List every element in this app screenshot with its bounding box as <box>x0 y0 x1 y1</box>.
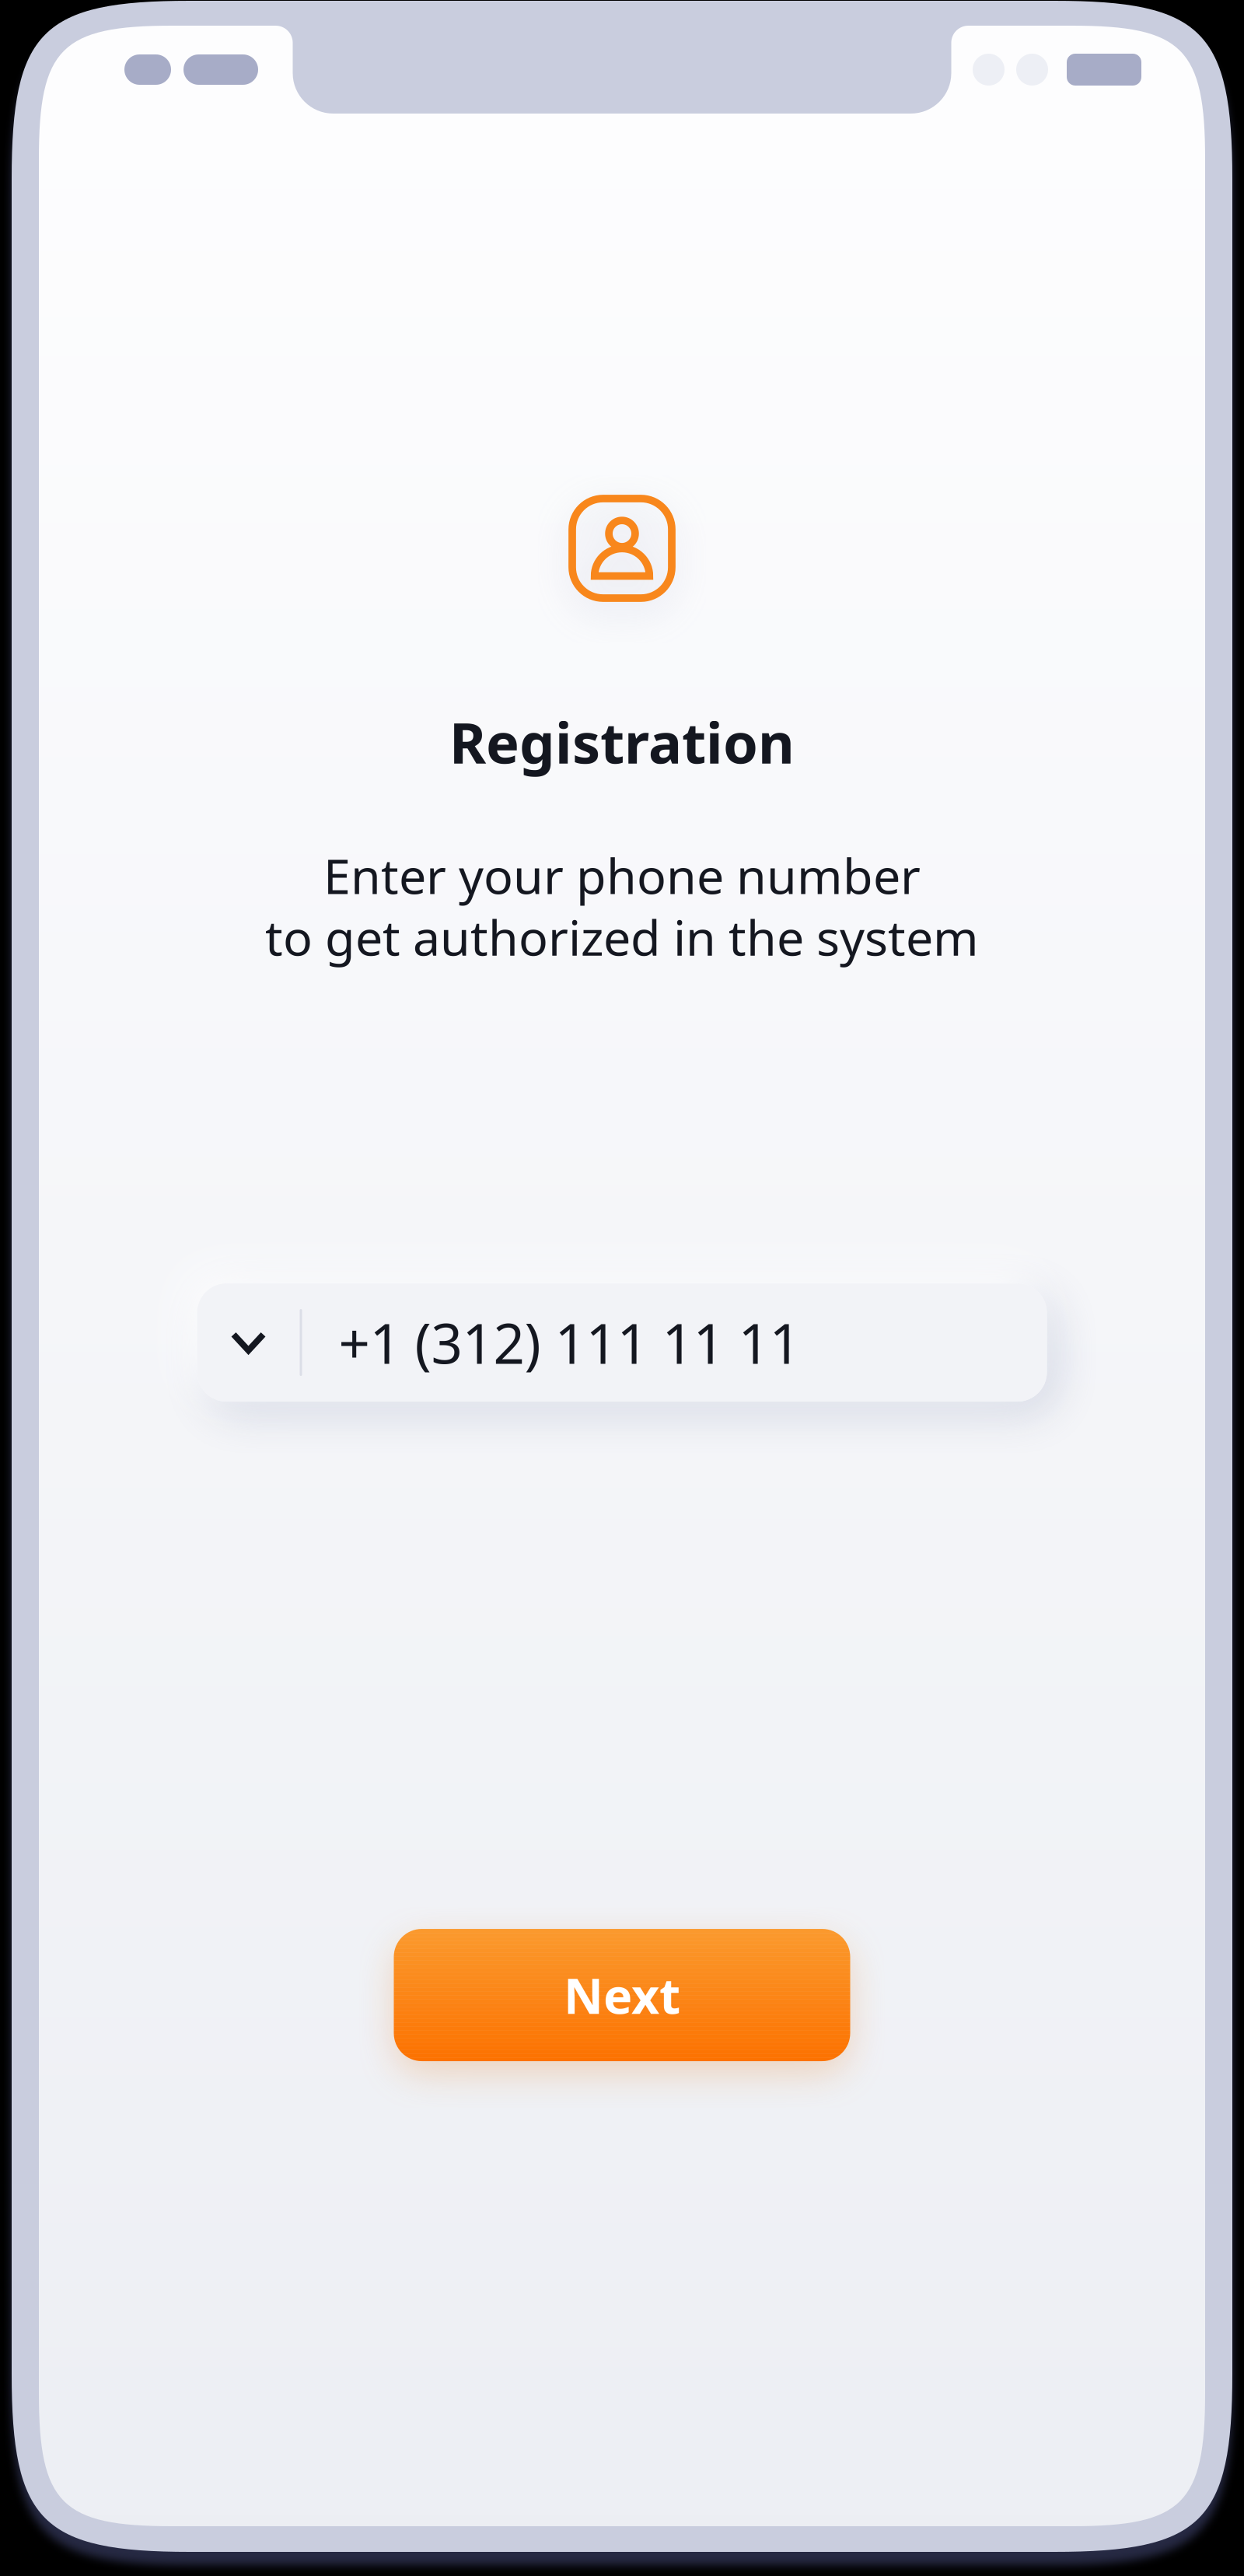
button[interactable]: Next <box>394 1929 850 2061</box>
staticText: Enter your phone number <box>323 843 921 908</box>
staticText: Registration <box>449 705 795 779</box>
staticText: +1 (312) 111 11 11 <box>339 1306 800 1379</box>
staticText: to get authorized in the system <box>265 904 979 969</box>
button[interactable]: +1 (312) 111 11 11 <box>197 1283 1047 1402</box>
staticText: Next <box>564 1963 680 2027</box>
